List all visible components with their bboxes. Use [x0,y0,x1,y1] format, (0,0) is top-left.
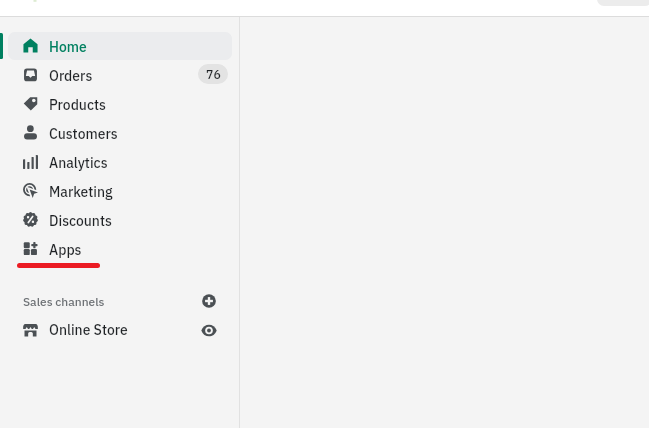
staticText: Marketing [49,183,113,201]
button[interactable] [8,32,232,60]
button[interactable] [8,61,232,89]
staticText: Sales channels [23,294,105,309]
button[interactable] [8,119,232,147]
button[interactable] [8,177,232,205]
staticText: Apps [49,241,82,259]
staticText: Orders [49,67,93,85]
button[interactable] [8,320,232,344]
button[interactable]: Preview store [198,319,220,341]
staticText: Home [49,38,87,56]
staticText: 76 [206,66,221,82]
button[interactable] [8,148,232,176]
staticText: Customers [49,125,118,143]
staticText: Products [49,96,106,114]
button[interactable]: Account menu [597,0,649,6]
button[interactable]: Add sales channel [198,290,220,312]
staticText: Discounts [49,212,112,230]
staticText: Analytics [49,154,108,172]
button[interactable] [8,90,232,118]
button[interactable] [8,235,232,263]
button[interactable] [8,206,232,234]
staticText: Online Store [49,321,128,339]
